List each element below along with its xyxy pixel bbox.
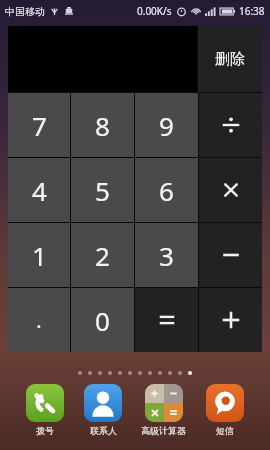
staticText: . [36,307,42,334]
button[interactable]: 联系人 [84,384,122,436]
button[interactable]: Plus [199,288,262,352]
button[interactable]: 拨号 [26,384,64,436]
staticText: 8 [95,108,110,143]
staticText: 7 [32,108,47,143]
staticText: 4 [32,173,47,208]
button[interactable]: 1 [8,223,70,287]
button[interactable]: 8 [71,93,134,157]
button[interactable]: Divide [199,93,262,157]
button[interactable]: 9 [135,93,198,157]
button[interactable]: 短信 [206,384,244,436]
button[interactable]: 删除 [198,26,262,92]
button[interactable]: Multiply [199,158,262,222]
staticText: 3 [159,238,174,273]
staticText: 0 [95,303,110,338]
button[interactable]: 7 [8,93,70,157]
button[interactable]: 4 [8,158,70,222]
staticText: 2 [95,238,110,273]
button[interactable]: Minus [199,223,262,287]
button[interactable]: 高级计算器 [141,384,186,436]
staticText: 拨号 [36,425,54,436]
button[interactable]: Equals [135,288,198,352]
button[interactable]: 2 [71,223,134,287]
button[interactable]: 0 [71,288,134,352]
staticText: 短信 [216,425,234,436]
button[interactable]: . [8,288,70,352]
staticText: 中国移动 [5,5,45,18]
staticText: 高级计算器 [141,425,186,436]
staticText: 联系人 [90,425,117,436]
staticText: 0.00K/s [137,4,172,18]
staticText: 5 [95,173,110,208]
staticText: 1 [32,238,47,273]
staticText: 16:38 [239,4,265,18]
staticText: 删除 [215,50,245,69]
button[interactable]: 6 [135,158,198,222]
staticText: 9 [159,108,174,143]
button[interactable]: 5 [71,158,134,222]
button[interactable]: 3 [135,223,198,287]
staticText: 6 [159,173,174,208]
